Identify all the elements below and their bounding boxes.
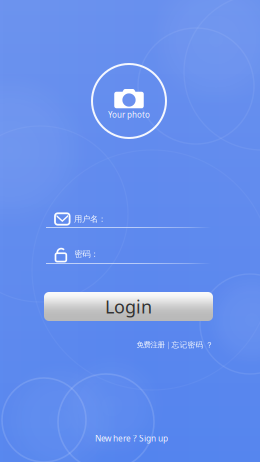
staticText: ｜: [164, 340, 171, 350]
button[interactable]: 忘记密码 ？: [171, 340, 213, 350]
staticText: 免费注册: [136, 340, 164, 350]
staticText: 密码：: [74, 249, 98, 259]
staticText: 用户名：: [74, 214, 106, 224]
staticText: Login: [105, 294, 152, 319]
button[interactable]: 免费注册: [136, 340, 164, 350]
button[interactable]: New here ? Sign up: [95, 433, 168, 444]
button[interactable]: Login: [44, 292, 213, 321]
button[interactable]: Choose your photo: [92, 64, 166, 138]
staticText: Your photo: [108, 109, 150, 120]
staticText: 忘记密码 ？: [171, 340, 213, 350]
staticText: New here ? Sign up: [95, 433, 168, 444]
